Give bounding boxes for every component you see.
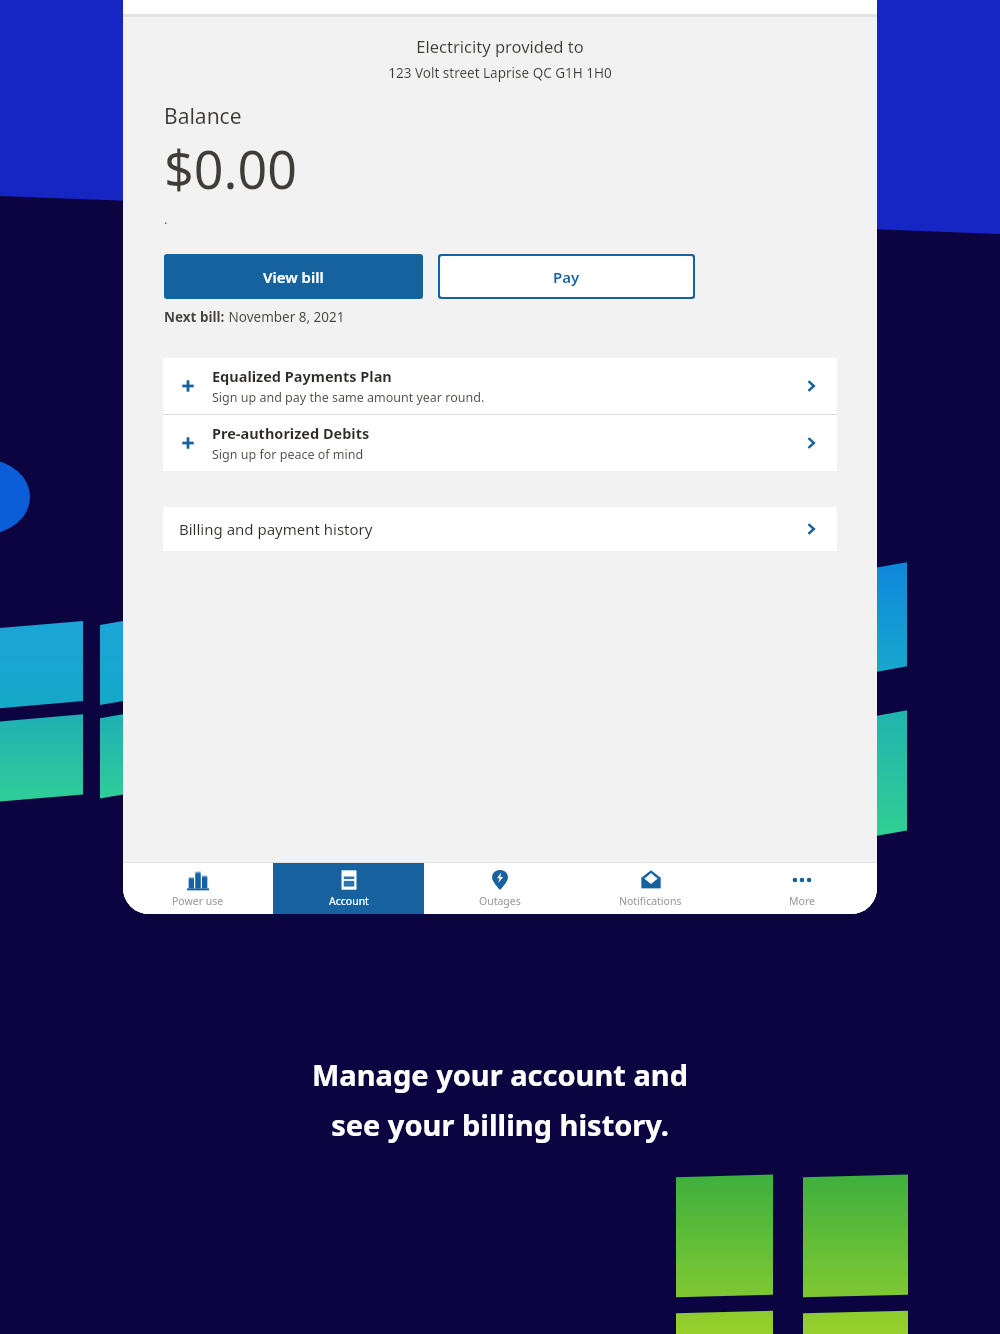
staticText: November 8, 2021 [225, 308, 345, 326]
staticText: Pre-authorized Debits [212, 423, 370, 443]
button[interactable]: Account [273, 863, 424, 914]
button[interactable]: Billing and payment history [163, 507, 837, 551]
staticText: . [164, 210, 168, 228]
staticText: Billing and payment history [179, 519, 803, 539]
staticText: Balance [164, 102, 242, 131]
staticText: Power use [172, 894, 224, 908]
staticText: see your billing history. [331, 1105, 669, 1144]
button[interactable]: Notifications [575, 863, 726, 914]
staticText: Manage your account and [312, 1055, 688, 1094]
staticText: Notifications [619, 894, 682, 908]
staticText: More [789, 894, 815, 908]
staticText: 123 Volt street Laprise QC G1H 1H0 [123, 64, 877, 82]
staticText: Equalized Payments Plan [212, 366, 392, 386]
button[interactable]: Pre-authorized Debits [163, 415, 837, 471]
staticText: Next bill: [164, 308, 225, 326]
staticText: Outages [479, 894, 521, 908]
staticText: Account [329, 894, 369, 908]
staticText: Sign up and pay the same amount year rou… [212, 389, 485, 406]
button[interactable]: View bill [164, 254, 423, 299]
button[interactable]: Power use [123, 863, 273, 914]
button[interactable]: More [726, 863, 877, 914]
staticText: $0.00 [164, 133, 297, 204]
button[interactable]: Pay [440, 256, 693, 297]
button[interactable]: Equalized Payments Plan [163, 358, 837, 414]
staticText: View bill [263, 267, 324, 287]
staticText: Sign up for peace of mind [212, 446, 364, 463]
staticText: Electricity provided to [123, 35, 877, 57]
button[interactable]: Outages [424, 863, 575, 914]
staticText: Pay [553, 267, 580, 287]
